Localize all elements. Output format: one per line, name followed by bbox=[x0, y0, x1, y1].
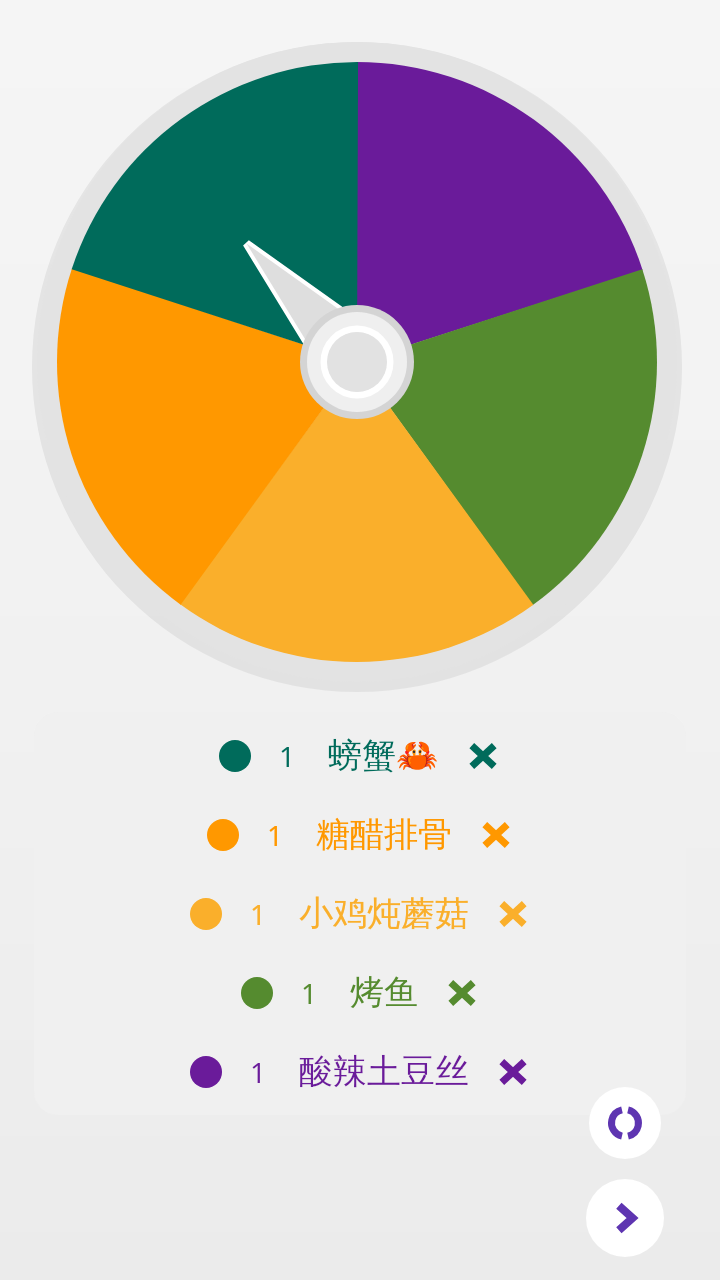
staticText: 酸辣土豆丝 bbox=[299, 1050, 469, 1093]
staticText: 1 bbox=[250, 895, 267, 933]
button[interactable]: 1 bbox=[34, 809, 686, 860]
staticText: 1 bbox=[267, 816, 284, 854]
button[interactable]: 1 bbox=[34, 967, 686, 1018]
staticText: 1 bbox=[250, 1053, 267, 1091]
staticText: 烤鱼 bbox=[350, 971, 418, 1014]
button[interactable]: Remove bbox=[444, 975, 480, 1011]
button[interactable]: Remove bbox=[495, 896, 531, 932]
staticText: 1 bbox=[279, 737, 296, 775]
staticText: 糖醋排骨 bbox=[316, 813, 452, 856]
staticText: 螃蟹🦀 bbox=[328, 734, 439, 777]
button[interactable]: Remove bbox=[478, 817, 514, 853]
staticText: 小鸡炖蘑菇 bbox=[299, 892, 469, 935]
button[interactable]: Shuffle bbox=[589, 1087, 661, 1159]
button[interactable]: Remove bbox=[465, 738, 501, 774]
staticText: 1 bbox=[301, 974, 318, 1012]
button[interactable]: Remove bbox=[495, 1054, 531, 1090]
button[interactable]: 1 bbox=[34, 1046, 686, 1097]
button[interactable]: 1 bbox=[34, 730, 686, 781]
button[interactable]: 1 bbox=[34, 888, 686, 939]
button[interactable]: Next bbox=[586, 1179, 664, 1257]
